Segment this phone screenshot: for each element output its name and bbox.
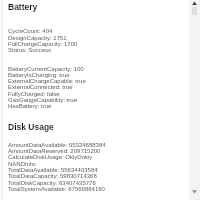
staticText: ExternalChargeCapable: true [8, 78, 86, 85]
staticText: ExternalConnected: true [8, 84, 73, 91]
staticText: GasGaugeCapability: true [8, 97, 78, 104]
staticText: Battery [8, 2, 38, 11]
staticText: FullyCharged: false [8, 91, 60, 98]
staticText: HasBattery: true [8, 103, 52, 110]
staticText: AmountDataReserved: 209715200 [8, 148, 101, 155]
staticText: BatteryIsCharging: true [8, 72, 70, 79]
staticText: Status: Success [8, 47, 52, 54]
staticText: AmountDataAvailable: 55324688384 [8, 142, 106, 149]
staticText: TotalDataAvailable: 55634403584 [8, 167, 98, 174]
staticText: TotalDiskCapacity: 63407435776 [8, 180, 96, 187]
staticText: CalculateDiskUsage: OkiyDokiy [8, 154, 93, 161]
button[interactable]: Scroll up [189, 0, 200, 7]
staticText: DesignCapacity: 1751 [8, 34, 67, 41]
staticText: TotalDataCapacity: 59830714368 [8, 173, 97, 180]
staticText: CycleCount: 404 [8, 28, 53, 35]
staticText: TotalSystemAvailable: 67569884160 [8, 186, 105, 193]
staticText: FullChargeCapacity: 1700 [8, 41, 78, 48]
button[interactable]: Scroll down [189, 189, 200, 200]
staticText: NANDInfo: [8, 161, 37, 168]
staticText: Disk Usage [8, 121, 54, 130]
staticText: BatteryCurrentCapacity: 100 [8, 65, 84, 72]
